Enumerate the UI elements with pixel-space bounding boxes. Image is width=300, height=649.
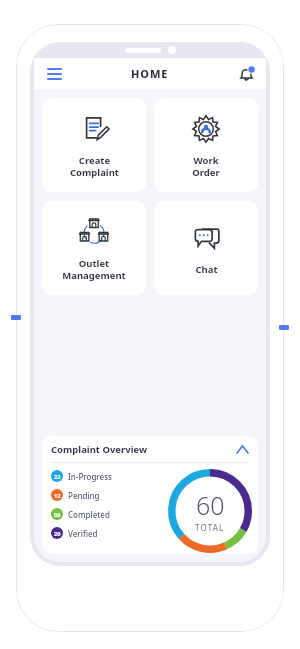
button[interactable]: Outlet Management bbox=[42, 201, 146, 295]
other: Collapse section bbox=[235, 442, 249, 456]
button[interactable]: Notifications bbox=[234, 62, 258, 86]
button[interactable]: Complaint Overview bbox=[51, 436, 249, 462]
button[interactable]: Open navigation menu bbox=[42, 62, 66, 86]
staticText: Complaint Overview bbox=[51, 443, 148, 456]
staticText: TOTAL bbox=[195, 522, 225, 533]
staticText: Pending bbox=[68, 490, 100, 501]
staticText: Chat bbox=[195, 263, 218, 276]
staticText: Verified bbox=[68, 528, 98, 539]
button[interactable]: Create Complaint bbox=[42, 98, 146, 192]
staticText: Outlet Management bbox=[62, 257, 126, 282]
staticText: Completed bbox=[68, 509, 110, 520]
staticText: In-Progress bbox=[68, 471, 112, 482]
staticText: 22 bbox=[54, 473, 61, 480]
staticText: HOME bbox=[131, 66, 169, 81]
staticText: 20 bbox=[54, 530, 61, 537]
staticText: 06 bbox=[54, 511, 61, 518]
staticText: Work Order bbox=[192, 154, 220, 179]
staticText: 12 bbox=[54, 492, 61, 499]
button[interactable]: Chat bbox=[154, 201, 258, 295]
staticText: Create Complaint bbox=[70, 154, 119, 179]
staticText: 60 bbox=[196, 488, 225, 522]
button[interactable]: Work Order bbox=[154, 98, 258, 192]
